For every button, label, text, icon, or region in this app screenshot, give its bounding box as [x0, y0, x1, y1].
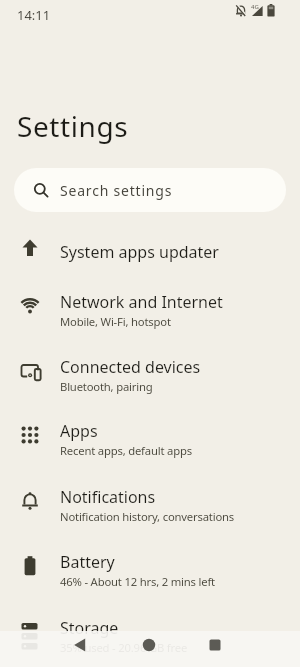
staticText: System apps updater	[60, 241, 219, 263]
staticText: Storage	[60, 617, 119, 639]
staticText: 14:11	[17, 6, 51, 24]
button[interactable]	[125, 631, 173, 667]
staticText: Network and Internet	[60, 291, 223, 313]
staticText: Apps	[60, 420, 98, 442]
staticText: Mobile, Wi-Fi, hotspot	[60, 314, 171, 329]
staticText: Search settings	[60, 181, 173, 200]
button[interactable]: Network and Internet	[0, 278, 300, 342]
staticText: 46% - About 12 hrs, 2 mins left	[60, 574, 215, 589]
staticText: Notification history, conversations	[60, 509, 235, 524]
staticText: Recent apps, default apps	[60, 443, 192, 458]
staticText: 35% used - 20.96 GB free	[60, 640, 188, 655]
button[interactable]: Storage	[0, 604, 300, 667]
staticText: 4G	[251, 3, 259, 11]
button[interactable]: System apps updater	[0, 220, 300, 284]
staticText: Settings	[17, 107, 129, 145]
staticText: Battery	[60, 551, 115, 573]
button[interactable]: Battery	[0, 538, 300, 602]
button[interactable]	[191, 631, 239, 667]
button[interactable]: Search settings	[14, 168, 286, 212]
staticText: Connected devices	[60, 356, 201, 378]
button[interactable]	[56, 631, 104, 667]
staticText: Notifications	[60, 486, 156, 508]
button[interactable]: Apps	[0, 407, 300, 471]
staticText: Bluetooth, pairing	[60, 379, 153, 394]
button[interactable]: Connected devices	[0, 343, 300, 407]
button[interactable]: Notifications	[0, 473, 300, 537]
